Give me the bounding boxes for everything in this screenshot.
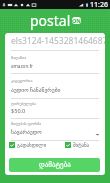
staticText: აუდიო ჩანაწერები [11, 86, 61, 94]
staticText: $50.0 [11, 107, 26, 115]
staticText: els3124-1453281464687 [11, 35, 105, 47]
staticText: amazon.fr [11, 63, 33, 69]
staticText: მიღების ფორმა [11, 121, 42, 126]
button[interactable]: მიტანა [65, 142, 90, 148]
staticText: სავარაუდო [11, 129, 42, 136]
button[interactable]: დამატება [9, 158, 100, 172]
staticText: postal [30, 11, 71, 30]
staticText: 11:26 [90, 0, 108, 9]
staticText: დამატება [39, 161, 71, 169]
staticText: გადახდილი [17, 142, 47, 148]
staticText: კატეგორია [11, 78, 33, 83]
staticText: ON [72, 17, 81, 24]
staticText: მაღაზია [11, 55, 27, 60]
staticText: მიტანა [73, 142, 90, 148]
staticText: ღირებულება [11, 101, 36, 106]
button[interactable]: გადახდილი [9, 142, 47, 148]
